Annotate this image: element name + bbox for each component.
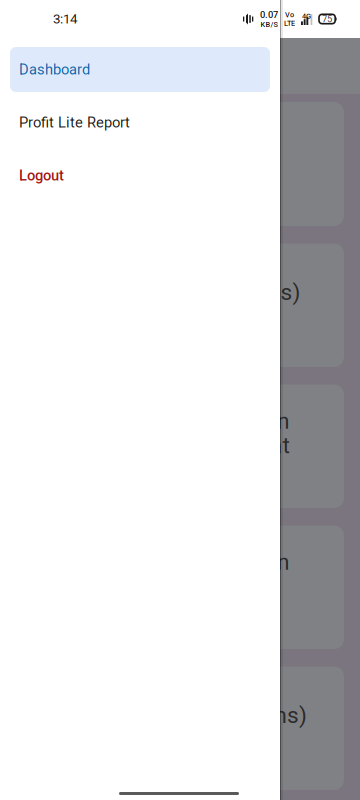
button[interactable]: Total Sales Collection	[16, 525, 344, 649]
staticText: 4G	[302, 12, 311, 21]
staticText: 3:14	[53, 11, 77, 27]
button[interactable]: Logout	[10, 153, 270, 198]
staticText: Sales (All Transactions)	[59, 279, 300, 305]
button[interactable]: Total Expense (All Items)	[16, 666, 344, 790]
staticText: KB/S	[260, 20, 277, 29]
button[interactable]: Dashboard	[10, 47, 270, 92]
staticText: Total Sales Collection	[70, 408, 290, 434]
button[interactable]: Sales (All Transactions)	[16, 243, 344, 367]
staticText: Profit Lite Report	[19, 114, 130, 131]
staticText: Total Sales Collection	[70, 549, 290, 575]
button[interactable]: Profit Lite Report	[10, 100, 270, 145]
staticText: Vo	[285, 10, 294, 19]
staticText: Total Expense (All Items)	[53, 702, 307, 728]
staticText: Outstanding Payment	[70, 432, 289, 459]
staticText: Logout	[19, 167, 64, 184]
button[interactable]: Total Sales	[16, 102, 344, 226]
staticText: Dashboard	[19, 61, 90, 78]
staticText: LTE	[284, 19, 295, 28]
button[interactable]: Total Sales Collection	[16, 384, 344, 508]
staticText: 75	[322, 13, 332, 24]
staticText: 0.07	[260, 9, 278, 20]
